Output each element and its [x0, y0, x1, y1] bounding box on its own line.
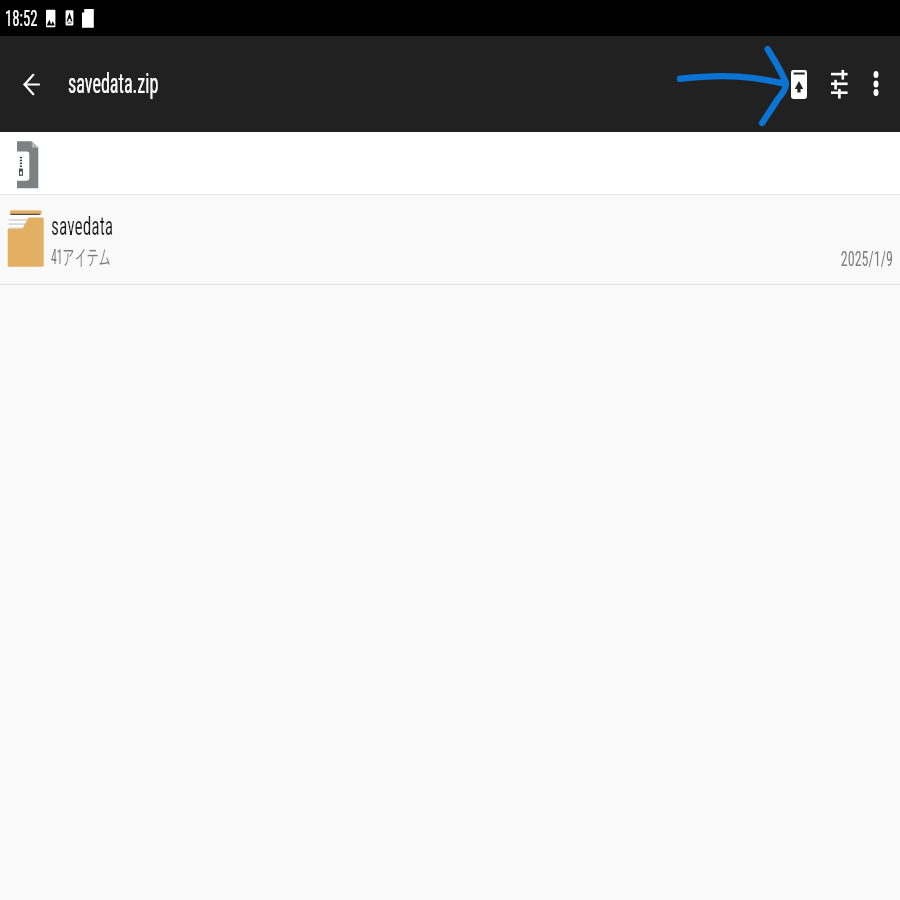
button[interactable]: savedata.zip archive — [0, 132, 900, 194]
button[interactable]: savedata — [0, 195, 900, 284]
staticText: 2025/1/9 — [841, 247, 893, 272]
staticText: 18:52 — [5, 6, 38, 32]
button[interactable]: Sort options — [812, 36, 852, 132]
button[interactable]: Back — [0, 36, 62, 132]
staticText: savedata.zip — [68, 68, 158, 100]
button[interactable]: Extract — [770, 36, 812, 132]
button[interactable]: More options — [852, 36, 900, 132]
staticText: 41アイテム — [51, 244, 111, 270]
staticText: savedata — [51, 211, 113, 241]
